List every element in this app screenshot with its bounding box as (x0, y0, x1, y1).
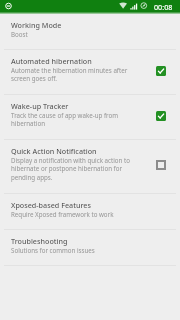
staticText: Automate the hibernation minutes after s… (11, 66, 137, 83)
button[interactable]: Quick Action Notification (0, 140, 180, 193)
staticText: Require Xposed framework to work (11, 210, 114, 218)
staticText: Troubleshooting (11, 236, 68, 246)
button[interactable]: Troubleshooting (0, 230, 180, 265)
button[interactable]: Xposed-based Features (0, 194, 180, 229)
staticText: Track the cause of app wake-up from hibe… (11, 111, 137, 128)
button[interactable]: Toggle (152, 107, 170, 125)
staticText: Solutions for common issues (11, 246, 95, 254)
staticText: Automated hibernation (11, 56, 92, 66)
staticText: Quick Action Notification (11, 146, 97, 156)
staticText: Display a notification with quick action… (11, 156, 137, 182)
button[interactable]: Toggle (152, 156, 170, 174)
button[interactable]: Toggle (152, 62, 170, 80)
button[interactable]: Working Mode (0, 14, 180, 49)
staticText: Working Mode (11, 20, 62, 30)
staticText: Xposed-based Features (11, 200, 91, 210)
staticText: Boost (11, 30, 28, 38)
button[interactable]: Notification (5, 0, 12, 12)
staticText: Wake-up Tracker (11, 101, 69, 111)
staticText: 00:08 (154, 2, 173, 12)
button[interactable]: Wake-up Tracker (0, 95, 180, 139)
button[interactable]: Automated hibernation (0, 50, 180, 94)
